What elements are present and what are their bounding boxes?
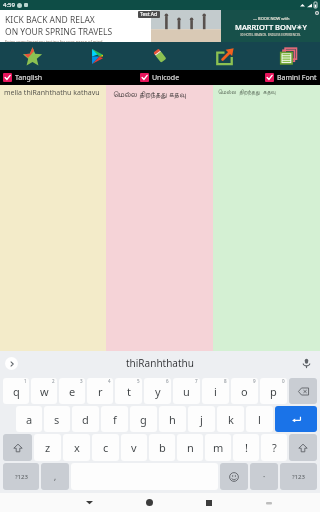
staticText: n <box>187 440 194 455</box>
button[interactable]: Copy <box>256 42 320 70</box>
staticText: ?123 <box>292 473 305 481</box>
button[interactable]: Home <box>119 493 179 512</box>
staticText: j <box>200 412 203 427</box>
button[interactable]: l <box>246 406 273 432</box>
button[interactable]: Shift <box>3 434 32 461</box>
staticText: Tanglish <box>15 73 43 83</box>
button[interactable]: y <box>144 378 171 404</box>
button[interactable]: Share <box>192 42 256 70</box>
button[interactable]: ! <box>233 434 259 461</box>
button[interactable]: f <box>101 406 128 432</box>
staticText: t <box>127 384 131 399</box>
staticText: 3 <box>80 378 83 384</box>
staticText: q <box>13 384 20 399</box>
button[interactable]: Back <box>59 493 119 512</box>
staticText: MARRIOTT BONV✴Y <box>235 22 307 32</box>
button[interactable]: Backspace <box>289 378 317 404</box>
staticText: 8 <box>224 378 227 384</box>
staticText: 1 <box>24 378 27 384</box>
staticText: z <box>45 440 51 455</box>
staticText: s <box>54 412 60 427</box>
staticText: Unicode <box>152 73 180 83</box>
button[interactable]: a <box>16 406 42 432</box>
button[interactable]: g <box>130 406 157 432</box>
staticText: k <box>228 412 234 427</box>
staticText: w <box>40 384 49 399</box>
button[interactable]: Expand suggestions <box>5 357 18 370</box>
staticText: thiRanhthathu <box>126 356 194 370</box>
button[interactable]: i <box>202 378 229 404</box>
staticText: 5 <box>137 378 140 384</box>
staticText: o <box>241 384 248 399</box>
button[interactable]: Open Play Store <box>64 42 128 70</box>
button[interactable]: , <box>41 463 69 490</box>
button[interactable]: Switch keyboard <box>239 493 299 512</box>
staticText: 4 <box>108 378 111 384</box>
staticText: p <box>270 384 277 399</box>
staticText: 7 <box>195 378 198 384</box>
staticText: — BOOK NOW with <box>253 16 290 21</box>
button[interactable]: t <box>115 378 142 404</box>
staticText: 2 <box>52 378 55 384</box>
button[interactable]: Recent apps <box>179 493 239 512</box>
staticText: மெல்ல திறந்தது கதவு <box>218 88 276 96</box>
button[interactable]: s <box>44 406 70 432</box>
button[interactable]: p <box>260 378 287 404</box>
staticText: y <box>155 384 161 399</box>
staticText: u <box>183 384 190 399</box>
button[interactable]: ?123 <box>280 463 317 490</box>
button[interactable]: o <box>231 378 258 404</box>
button[interactable]: q <box>3 378 29 404</box>
staticText: r <box>98 384 103 399</box>
staticText: b <box>159 440 166 455</box>
button[interactable]: ? <box>261 434 287 461</box>
button[interactable]: u <box>173 378 200 404</box>
staticText: Enjoy complimentary testing for your pea… <box>5 39 104 42</box>
button[interactable]: h <box>159 406 186 432</box>
button[interactable]: Favourite <box>0 42 64 70</box>
button[interactable]: · <box>250 463 278 490</box>
staticText: ? <box>272 440 277 455</box>
button[interactable]: e <box>59 378 85 404</box>
button[interactable]: d <box>72 406 99 432</box>
staticText: v <box>131 440 137 455</box>
button[interactable]: m <box>205 434 231 461</box>
staticText: a <box>26 412 33 427</box>
button[interactable]: Clear text <box>128 42 192 70</box>
staticText: KICK BACK AND RELAX <box>5 14 95 26</box>
button[interactable]: Voice input <box>299 356 313 370</box>
button[interactable]: Tanglish <box>0 70 46 85</box>
button[interactable]: Unicode <box>137 70 183 85</box>
staticText: m <box>213 440 224 455</box>
button[interactable]: Emoji <box>220 463 248 490</box>
staticText: · <box>263 471 266 482</box>
staticText: d <box>82 412 89 427</box>
staticText: 4:59 <box>3 1 15 9</box>
staticText: ! <box>245 440 248 455</box>
button[interactable]: v <box>121 434 147 461</box>
staticText: Test Ad <box>140 11 158 18</box>
button[interactable]: j <box>188 406 215 432</box>
staticText: 30 HOTEL BRANDS. ENDLESS EXPERIENCES. <box>240 33 302 37</box>
staticText: h <box>169 412 176 427</box>
button[interactable]: z <box>34 434 61 461</box>
button[interactable]: c <box>92 434 119 461</box>
button[interactable]: w <box>31 378 57 404</box>
staticText: 6 <box>166 378 169 384</box>
staticText: மெல்ல திறந்தது கதவு <box>113 88 186 99</box>
button[interactable]: n <box>177 434 203 461</box>
button[interactable]: Shift <box>289 434 317 461</box>
staticText: 9 <box>253 378 256 384</box>
staticText: e <box>69 384 76 399</box>
button[interactable]: Enter <box>275 406 317 432</box>
button[interactable]: x <box>63 434 90 461</box>
button[interactable]: ?123 <box>3 463 39 490</box>
button[interactable]: b <box>149 434 175 461</box>
staticText: 0 <box>282 378 285 384</box>
button[interactable]: Bamini Font <box>262 70 320 85</box>
button[interactable]: k <box>217 406 244 432</box>
staticText: mella thiRanhthathu kathavu <box>4 88 100 98</box>
button[interactable]: r <box>87 378 113 404</box>
staticText: , <box>54 471 57 482</box>
